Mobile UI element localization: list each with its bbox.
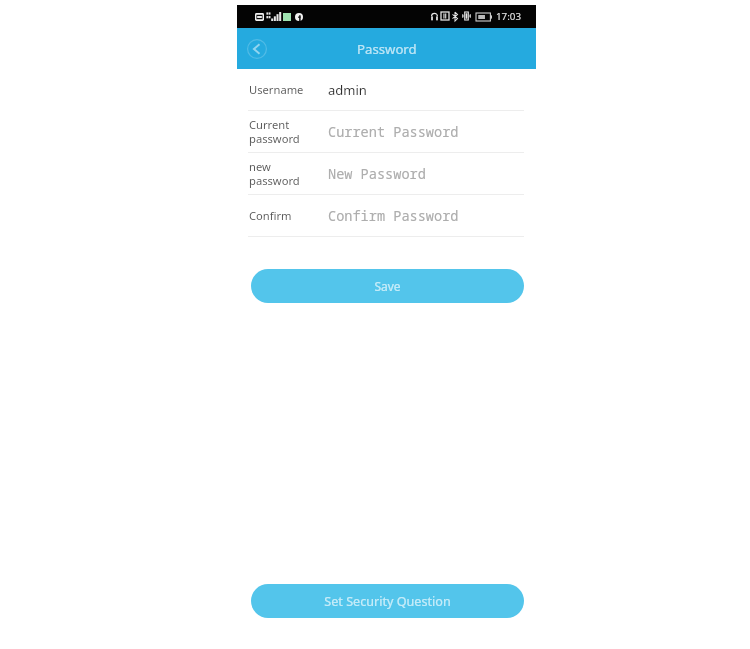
staticText: Password	[357, 40, 417, 58]
button[interactable]: Set Security Question	[251, 584, 524, 618]
button[interactable]: new password	[237, 153, 536, 194]
button[interactable]: Username	[237, 69, 536, 110]
staticText: Current Password	[328, 122, 459, 141]
staticText: Save	[374, 278, 401, 294]
staticText: admin	[328, 81, 367, 99]
staticText: Set Security Question	[324, 593, 451, 610]
staticText: Username	[249, 82, 304, 97]
staticText: New Password	[328, 164, 426, 183]
staticText: Confirm	[249, 208, 292, 223]
button[interactable]: Back	[244, 36, 270, 62]
staticText: 17:03	[496, 10, 522, 23]
button[interactable]: Confirm	[237, 195, 536, 236]
staticText: Current password	[249, 117, 300, 146]
button[interactable]: Current password	[237, 111, 536, 152]
staticText: Confirm Password	[328, 206, 459, 225]
staticText: new password	[249, 159, 300, 188]
button[interactable]: Save	[251, 269, 524, 303]
